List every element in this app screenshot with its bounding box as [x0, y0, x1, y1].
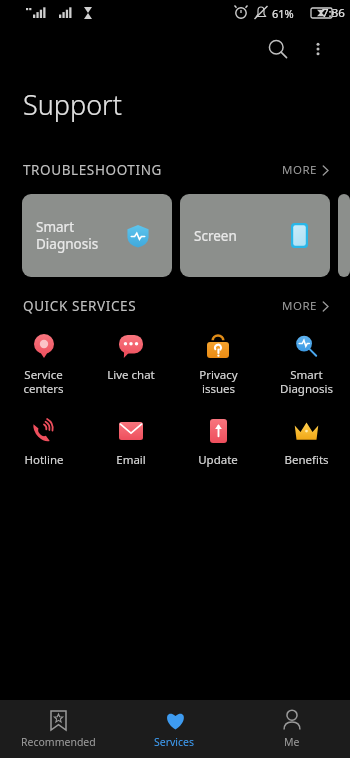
staticText: Benefits: [284, 452, 329, 468]
staticText: Service centers: [23, 367, 64, 396]
staticText: Email: [116, 452, 146, 468]
button[interactable]: B: [338, 194, 350, 277]
staticText: 61%: [272, 6, 294, 21]
button[interactable]: Search: [258, 29, 298, 69]
staticText: Screen: [194, 227, 237, 245]
staticText: Services: [154, 735, 195, 749]
staticText: Smart Diagnosis: [280, 367, 333, 396]
button[interactable]: Benefits: [262, 414, 350, 472]
button[interactable]: Smart Diagnosis: [22, 194, 172, 277]
staticText: Support: [23, 86, 122, 123]
staticText: MORE: [282, 162, 317, 178]
staticText: Update: [198, 452, 238, 468]
staticText: MORE: [282, 298, 317, 314]
button[interactable]: Me: [233, 700, 350, 758]
button[interactable]: Update: [174, 414, 262, 472]
staticText: TROUBLESHOOTING: [23, 161, 162, 179]
button[interactable]: More options: [298, 29, 338, 69]
staticText: Privacy issues: [199, 367, 238, 396]
button[interactable]: Screen: [180, 194, 330, 277]
button[interactable]: Email: [87, 414, 174, 472]
staticText: Recommended: [21, 735, 96, 749]
button[interactable]: Live chat: [87, 329, 174, 387]
staticText: Hotline: [24, 452, 64, 468]
button[interactable]: Recommended: [0, 700, 116, 758]
button[interactable]: Hotline: [0, 414, 87, 472]
button[interactable]: Privacy issues: [174, 329, 262, 400]
button[interactable]: Smart Diagnosis: [262, 329, 350, 400]
button[interactable]: Services: [116, 700, 233, 758]
staticText: Smart Diagnosis: [36, 218, 99, 253]
staticText: Live chat: [107, 367, 155, 383]
button[interactable]: MORE: [280, 296, 332, 316]
staticText: Me: [284, 735, 300, 749]
button[interactable]: MORE: [280, 160, 332, 180]
button[interactable]: Service centers: [0, 329, 87, 400]
staticText: 7:36: [322, 5, 345, 21]
staticText: QUICK SERVICES: [23, 297, 137, 315]
